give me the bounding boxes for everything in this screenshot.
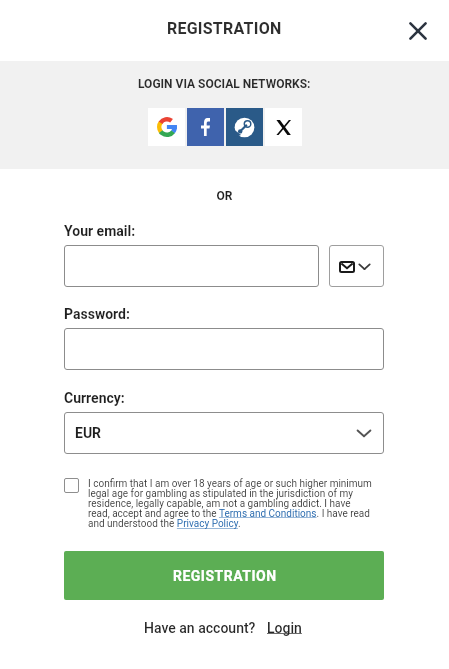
staticText: I confirm that I am over 18 years of age… [88, 478, 374, 530]
staticText: LOGIN VIA SOCIAL NETWORKS: [138, 77, 311, 91]
staticText: OR [0, 189, 449, 203]
button[interactable]: Sign in with Facebook [187, 108, 224, 146]
staticText: REGISTRATION [167, 19, 282, 38]
staticText: Currency: [64, 390, 125, 406]
button[interactable]: Sign in with Steam [226, 108, 263, 146]
button[interactable]: Close [399, 12, 437, 50]
staticText: EUR [75, 425, 102, 441]
staticText: Have an account? [144, 620, 256, 636]
button[interactable]: REGISTRATION [64, 551, 384, 600]
button[interactable]: Sign in with Google [148, 108, 185, 146]
button[interactable]: Your email [64, 245, 319, 287]
staticText: Your email: [64, 223, 136, 239]
staticText: Password: [64, 306, 130, 322]
button[interactable]: Password [64, 328, 384, 370]
button[interactable]: Confirm age and terms [64, 478, 79, 493]
staticText: REGISTRATION [173, 568, 277, 584]
button[interactable]: Login [267, 620, 302, 636]
button[interactable]: Currency [64, 412, 384, 454]
button[interactable]: Sign in with X [265, 108, 302, 146]
button[interactable]: Email provider [329, 245, 384, 287]
